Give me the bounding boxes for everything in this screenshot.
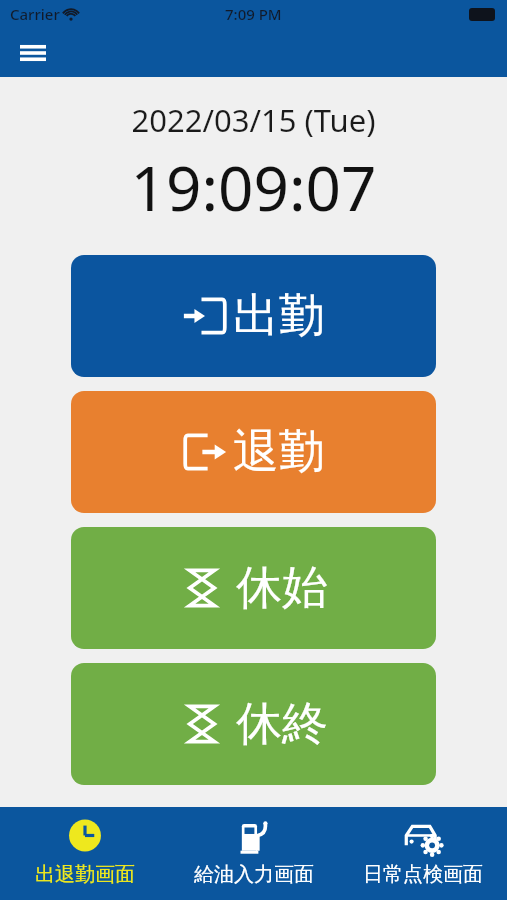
staticText: 出勤 xyxy=(233,287,325,345)
staticText: 休始 xyxy=(236,559,328,617)
button[interactable]: Menu xyxy=(12,32,54,74)
button[interactable]: 日常点検画面 xyxy=(338,807,507,900)
button[interactable]: 休終 xyxy=(71,663,436,785)
staticText: 休終 xyxy=(236,695,328,753)
button[interactable]: 出勤 xyxy=(71,255,436,377)
button[interactable]: 退勤 xyxy=(71,391,436,513)
button[interactable]: 休始 xyxy=(71,527,436,649)
staticText: 19:09:07 xyxy=(0,145,507,229)
button[interactable]: 給油入力画面 xyxy=(169,807,338,900)
staticText: 7:09 PM xyxy=(225,4,282,24)
staticText: 退勤 xyxy=(233,423,325,481)
staticText: Carrier xyxy=(10,4,60,24)
staticText: 給油入力画面 xyxy=(194,862,314,887)
staticText: 2022/03/15 (Tue) xyxy=(0,99,507,141)
staticText: 出退勤画面 xyxy=(35,862,135,887)
staticText: 日常点検画面 xyxy=(363,862,483,887)
button[interactable]: 出退勤画面 xyxy=(0,807,169,900)
